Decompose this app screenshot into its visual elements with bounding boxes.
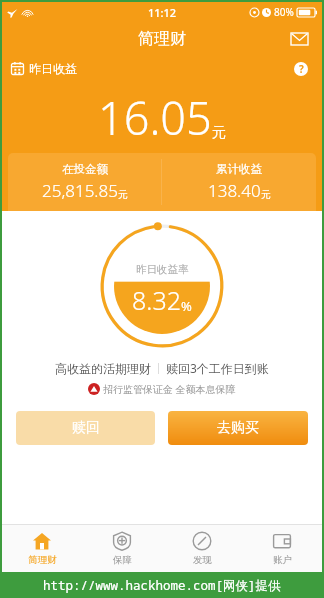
staticText: http://www.hackhome.com[网侠]提供 <box>43 577 281 594</box>
staticText: 发现 <box>193 554 212 566</box>
staticText: 高收益的活期理财 <box>55 361 151 376</box>
staticText: ? <box>299 62 304 76</box>
staticText: 赎回 <box>72 419 100 437</box>
staticText: 账户 <box>273 554 292 566</box>
button[interactable]: 赎回 <box>16 411 155 445</box>
button[interactable]: Messages <box>284 24 314 54</box>
staticText: 元 <box>212 124 226 142</box>
staticText: 元 <box>261 188 271 201</box>
staticText: 8.32 <box>132 283 181 317</box>
button[interactable]: 发现 <box>162 525 242 572</box>
button[interactable]: 保障 <box>82 525 162 572</box>
staticText: 赎回3个工作日到账 <box>166 360 269 376</box>
staticText: 招行监管保证金 全额本息保障 <box>103 382 236 396</box>
staticText: 累计收益 <box>216 162 262 176</box>
button[interactable]: Help <box>290 58 312 80</box>
staticText: 昨日收益率 <box>136 263 189 276</box>
staticText: 138.40 <box>208 179 261 202</box>
staticText: 在投金额 <box>62 162 108 176</box>
staticText: 去购买 <box>217 419 259 437</box>
staticText: 简理财 <box>28 554 57 566</box>
staticText: 16.05 <box>98 87 212 148</box>
staticText: 11:12 <box>148 5 177 20</box>
staticText: 元 <box>118 188 128 201</box>
staticText: 昨日收益 <box>29 61 77 76</box>
staticText: % <box>181 297 192 315</box>
button[interactable]: 在投金额 <box>8 153 161 211</box>
staticText: 简理财 <box>138 29 186 49</box>
button[interactable]: 去购买 <box>168 411 308 445</box>
button[interactable]: 累计收益 <box>162 153 316 211</box>
button[interactable]: 简理财 <box>2 525 82 572</box>
staticText: 80% <box>274 5 294 19</box>
button[interactable]: 账户 <box>242 525 322 572</box>
button[interactable]: 昨日收益 <box>11 61 77 76</box>
staticText: 保障 <box>113 554 132 566</box>
staticText: 25,815.85 <box>42 179 118 202</box>
